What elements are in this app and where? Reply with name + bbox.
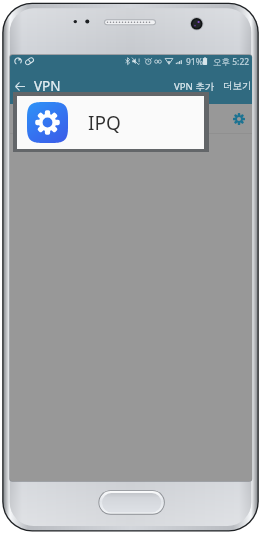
button[interactable]: IPQ [17,96,204,149]
button[interactable]: VPN 추가 [168,70,219,103]
staticText: 오후 5:22 [213,56,250,68]
staticText: 더보기 [223,80,252,92]
button[interactable]: VPN settings [226,104,251,133]
button[interactable]: VPN settings [10,104,252,133]
button[interactable]: Back [10,68,30,104]
staticText: 91% [186,56,203,68]
staticText: VPN [34,77,61,95]
staticText: IPQ [88,110,121,136]
button[interactable]: 더보기 [219,70,252,102]
staticText: VPN 추가 [174,80,215,93]
